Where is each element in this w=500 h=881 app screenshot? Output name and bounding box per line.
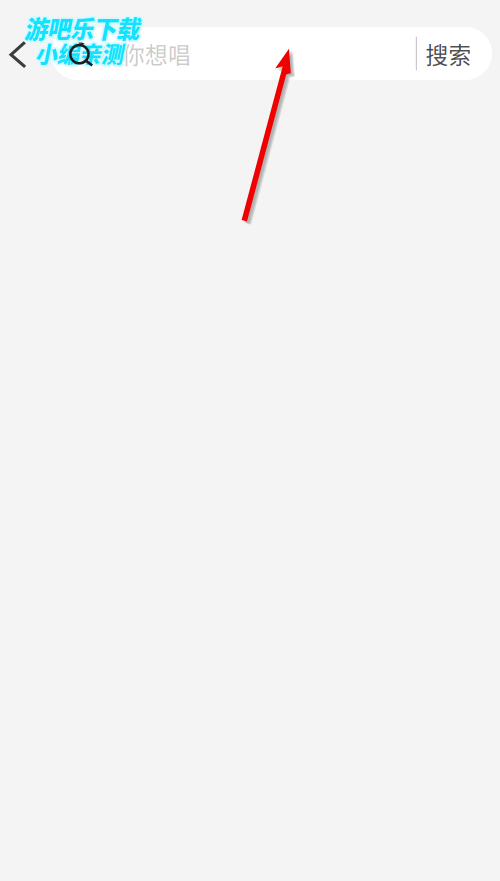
staticText: 游吧乐下载 (22, 11, 137, 45)
staticText: 小编亲测 (33, 35, 121, 67)
staticText: 小编亲测 (33, 38, 121, 70)
button[interactable]: 搜索 (417, 27, 480, 80)
staticText: 小编亲测 (37, 37, 125, 69)
staticText: 小编亲测 (35, 39, 123, 71)
staticText: 游吧乐下载 (25, 12, 140, 46)
staticText: 小编亲测 (35, 37, 123, 69)
staticText: 游吧乐下载 (25, 9, 140, 43)
staticText: 小编亲测 (33, 37, 121, 69)
staticText: 小编亲测 (36, 35, 124, 67)
staticText: 游吧乐下载 (24, 9, 139, 43)
staticText: 游吧乐下载 (26, 11, 141, 45)
staticText: 小编亲测 (35, 35, 123, 67)
staticText: 游吧乐下载 (22, 9, 137, 43)
staticText: 猜你想唱 (99, 37, 191, 70)
staticText: 游吧乐下载 (24, 11, 139, 45)
staticText: 小编亲测 (36, 38, 124, 70)
staticText: 游吧乐下载 (22, 12, 137, 46)
staticText: 游吧乐下载 (24, 13, 139, 47)
staticText: 搜索 (425, 37, 471, 70)
button[interactable]: Back (0, 27, 51, 80)
